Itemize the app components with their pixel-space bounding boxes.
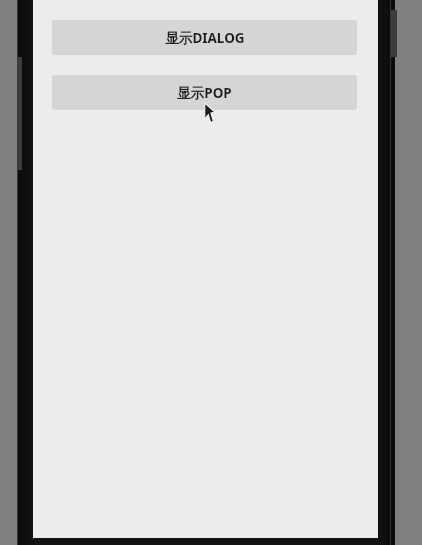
staticText: 显示POP xyxy=(177,84,232,102)
button[interactable]: 显示DIALOG xyxy=(52,20,357,55)
staticText: 显示DIALOG xyxy=(165,29,245,47)
button[interactable]: 显示POP xyxy=(52,75,357,110)
